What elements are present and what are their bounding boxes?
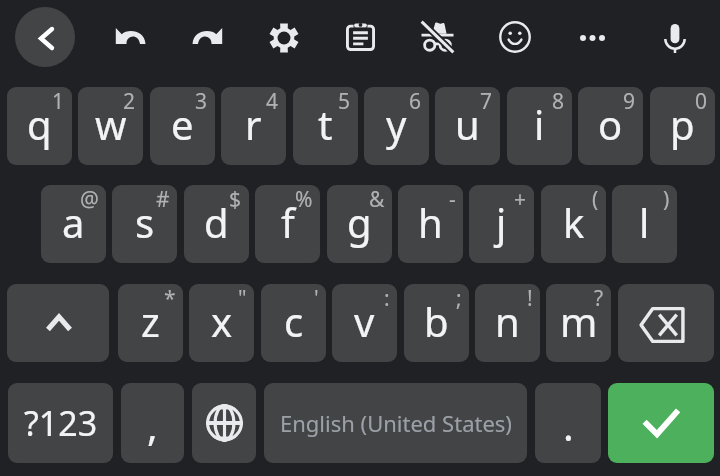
- button[interactable]: q: [7, 87, 72, 165]
- button[interactable]: Back: [15, 7, 75, 67]
- staticText: .: [563, 398, 574, 452]
- staticText: ;: [456, 284, 462, 313]
- staticText: s: [135, 195, 155, 249]
- button[interactable]: Change language: [192, 383, 256, 463]
- button[interactable]: Space: [264, 383, 527, 463]
- staticText: ?: [594, 284, 604, 313]
- button[interactable]: Incognito mode: [409, 9, 465, 65]
- button[interactable]: Emoji: [487, 9, 543, 65]
- staticText: 4: [266, 87, 279, 116]
- button[interactable]: r: [221, 87, 286, 165]
- staticText: m: [560, 294, 598, 348]
- button[interactable]: Redo: [179, 8, 235, 64]
- button[interactable]: Enter: [608, 383, 714, 463]
- staticText: &: [369, 185, 385, 214]
- staticText: ?123: [24, 400, 98, 446]
- staticText: 7: [480, 87, 493, 116]
- button[interactable]: e: [150, 87, 215, 165]
- staticText: 2: [123, 87, 136, 116]
- staticText: q: [27, 97, 52, 151]
- button[interactable]: d: [184, 185, 249, 263]
- staticText: 0: [695, 87, 708, 116]
- button[interactable]: Symbols: [8, 383, 113, 463]
- button[interactable]: h: [398, 185, 463, 263]
- staticText: v: [354, 294, 375, 348]
- button[interactable]: s: [112, 185, 177, 263]
- staticText: c: [284, 294, 304, 348]
- button[interactable]: x: [189, 284, 254, 362]
- staticText: g: [347, 195, 372, 249]
- staticText: ': [314, 284, 319, 313]
- button[interactable]: c: [261, 284, 326, 362]
- button[interactable]: k: [541, 185, 606, 263]
- staticText: 5: [338, 87, 351, 116]
- button[interactable]: j: [469, 185, 534, 263]
- staticText: u: [455, 97, 480, 151]
- button[interactable]: o: [578, 87, 643, 165]
- staticText: n: [495, 294, 520, 348]
- staticText: English (United States): [280, 408, 512, 438]
- staticText: h: [418, 195, 443, 249]
- button[interactable]: l: [612, 185, 677, 263]
- staticText: ": [238, 284, 247, 313]
- staticText: %: [295, 185, 313, 214]
- staticText: x: [211, 294, 233, 348]
- staticText: (: [592, 185, 599, 214]
- button[interactable]: n: [475, 284, 540, 362]
- staticText: d: [204, 195, 229, 249]
- staticText: r: [245, 97, 262, 151]
- staticText: w: [95, 97, 127, 151]
- staticText: p: [670, 97, 695, 151]
- button[interactable]: Undo: [102, 8, 158, 64]
- staticText: #: [156, 185, 170, 214]
- button[interactable]: Voice input: [647, 10, 703, 66]
- staticText: k: [563, 195, 585, 249]
- staticText: 3: [195, 87, 208, 116]
- staticText: z: [141, 294, 160, 348]
- staticText: $: [229, 185, 242, 214]
- button[interactable]: g: [327, 185, 392, 263]
- staticText: !: [527, 284, 533, 313]
- staticText: -: [449, 185, 456, 214]
- button[interactable]: Shift: [7, 284, 109, 362]
- button[interactable]: t: [293, 87, 358, 165]
- staticText: l: [639, 195, 650, 249]
- button[interactable]: z: [118, 284, 183, 362]
- staticText: b: [424, 294, 449, 348]
- staticText: ): [663, 185, 670, 214]
- button[interactable]: More options: [564, 10, 620, 66]
- staticText: f: [281, 195, 295, 249]
- staticText: e: [171, 97, 194, 151]
- staticText: :: [384, 284, 390, 313]
- staticText: +: [514, 185, 527, 214]
- button[interactable]: Settings: [256, 10, 312, 66]
- button[interactable]: b: [404, 284, 469, 362]
- button[interactable]: p: [650, 87, 715, 165]
- staticText: t: [318, 97, 333, 151]
- button[interactable]: y: [364, 87, 429, 165]
- button[interactable]: i: [507, 87, 572, 165]
- button[interactable]: Comma: [121, 383, 184, 463]
- button[interactable]: Clipboard: [332, 9, 388, 65]
- staticText: 1: [52, 87, 65, 116]
- staticText: i: [534, 97, 545, 151]
- staticText: 9: [623, 87, 636, 116]
- button[interactable]: f: [255, 185, 320, 263]
- button[interactable]: Period: [535, 383, 601, 463]
- button[interactable]: Backspace: [618, 284, 714, 362]
- staticText: a: [62, 195, 85, 249]
- button[interactable]: v: [332, 284, 397, 362]
- staticText: o: [598, 97, 623, 151]
- staticText: ,: [147, 398, 158, 452]
- button[interactable]: a: [41, 185, 106, 263]
- button[interactable]: w: [78, 87, 143, 165]
- staticText: 6: [409, 87, 422, 116]
- staticText: 8: [552, 87, 565, 116]
- button[interactable]: m: [546, 284, 611, 362]
- button[interactable]: u: [435, 87, 500, 165]
- staticText: y: [386, 97, 407, 151]
- staticText: @: [80, 185, 99, 214]
- staticText: *: [164, 284, 176, 313]
- staticText: j: [496, 195, 507, 249]
